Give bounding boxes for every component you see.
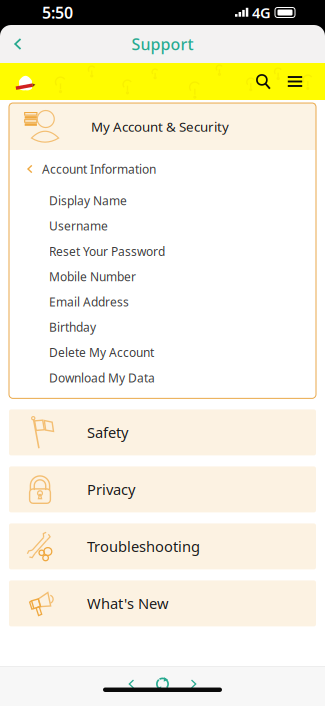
staticText: 5:50 <box>42 2 73 23</box>
button[interactable]: Back <box>0 26 37 62</box>
staticText: Support <box>131 33 193 55</box>
button[interactable]: Download My Data <box>9 365 316 390</box>
button[interactable]: Mobile Number <box>9 264 316 289</box>
button[interactable]: Email Address <box>9 289 316 314</box>
staticText: Account Information <box>42 161 156 177</box>
staticText: What's New <box>87 594 169 613</box>
button[interactable]: Username <box>9 213 316 239</box>
staticText: My Account & Security <box>91 118 229 135</box>
button[interactable]: Troubleshooting <box>9 523 316 569</box>
staticText: Mobile Number <box>49 269 136 284</box>
button[interactable]: What's New <box>9 580 316 626</box>
staticText: Birthday <box>49 319 96 335</box>
button[interactable]: Forward <box>178 668 209 699</box>
staticText: Troubleshooting <box>87 537 200 556</box>
button[interactable]: Reset Your Password <box>9 239 316 264</box>
button[interactable]: Delete My Account <box>9 340 316 365</box>
button[interactable]: Search <box>247 63 279 99</box>
staticText: Delete My Account <box>49 344 154 360</box>
button[interactable]: Back <box>116 668 147 699</box>
button[interactable]: Birthday <box>9 314 316 340</box>
staticText: Email Address <box>49 294 129 310</box>
button[interactable]: Safety <box>9 409 316 455</box>
staticText: 4G <box>252 3 271 22</box>
button[interactable]: Snapchat home <box>10 63 41 100</box>
staticText: Safety <box>87 423 128 442</box>
button[interactable]: Menu <box>279 63 311 99</box>
staticText: Display Name <box>49 193 127 209</box>
staticText: Privacy <box>87 480 135 499</box>
staticText: Username <box>49 218 108 234</box>
button[interactable]: Reload <box>147 668 178 699</box>
button[interactable]: Display Name <box>9 188 316 213</box>
staticText: Reset Your Password <box>49 243 165 259</box>
staticText: Download My Data <box>49 370 155 386</box>
button[interactable]: Account Information <box>9 150 316 188</box>
button[interactable]: Privacy <box>9 466 316 512</box>
